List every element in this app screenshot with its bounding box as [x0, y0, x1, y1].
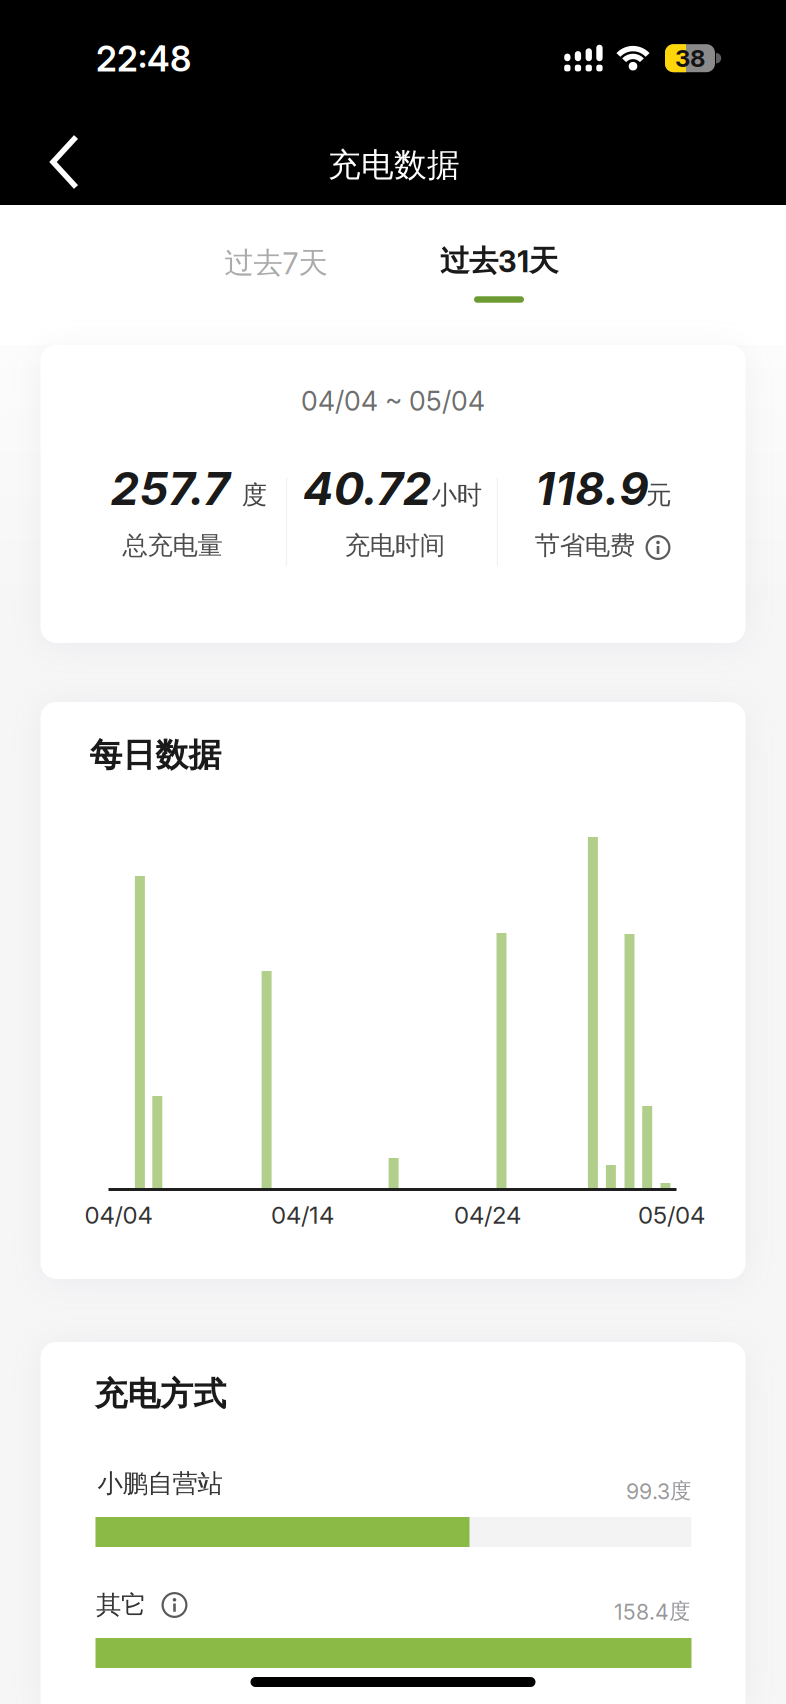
staticText: 158.4度: [614, 1598, 690, 1625]
staticText: 99.3度: [626, 1478, 691, 1504]
staticText: 元: [646, 479, 671, 511]
staticText: 总充电量: [122, 529, 222, 561]
staticText: 过去7天: [224, 244, 327, 281]
staticText: 其它: [96, 1589, 146, 1621]
staticText: 充电方式: [94, 1373, 226, 1415]
button[interactable]: 节省电费说明: [645, 535, 670, 560]
staticText: 节省电费: [535, 529, 635, 561]
button[interactable]: 过去31天: [434, 232, 564, 289]
button[interactable]: 过去7天: [218, 234, 333, 291]
staticText: 度: [242, 479, 267, 511]
staticText: 257.7: [110, 461, 229, 516]
staticText: 04/04: [84, 1200, 152, 1229]
staticText: 22:48: [96, 38, 191, 80]
staticText: 充电数据: [328, 144, 460, 186]
button[interactable]: 其它充电方式说明: [161, 1592, 187, 1618]
staticText: 04/14: [271, 1200, 334, 1229]
staticText: 38: [675, 44, 705, 73]
staticText: 04/24: [454, 1200, 521, 1229]
staticText: 小鹏自营站: [97, 1467, 222, 1499]
staticText: 充电时间: [345, 529, 445, 561]
staticText: 小时: [432, 479, 482, 511]
staticText: 118.9: [535, 461, 648, 516]
button[interactable]: Back: [28, 120, 102, 204]
staticText: 04/04 ~ 05/04: [301, 385, 485, 417]
staticText: 05/04: [638, 1200, 705, 1229]
staticText: 过去31天: [440, 242, 558, 279]
staticText: 40.72: [303, 461, 432, 516]
staticText: 每日数据: [89, 734, 221, 776]
